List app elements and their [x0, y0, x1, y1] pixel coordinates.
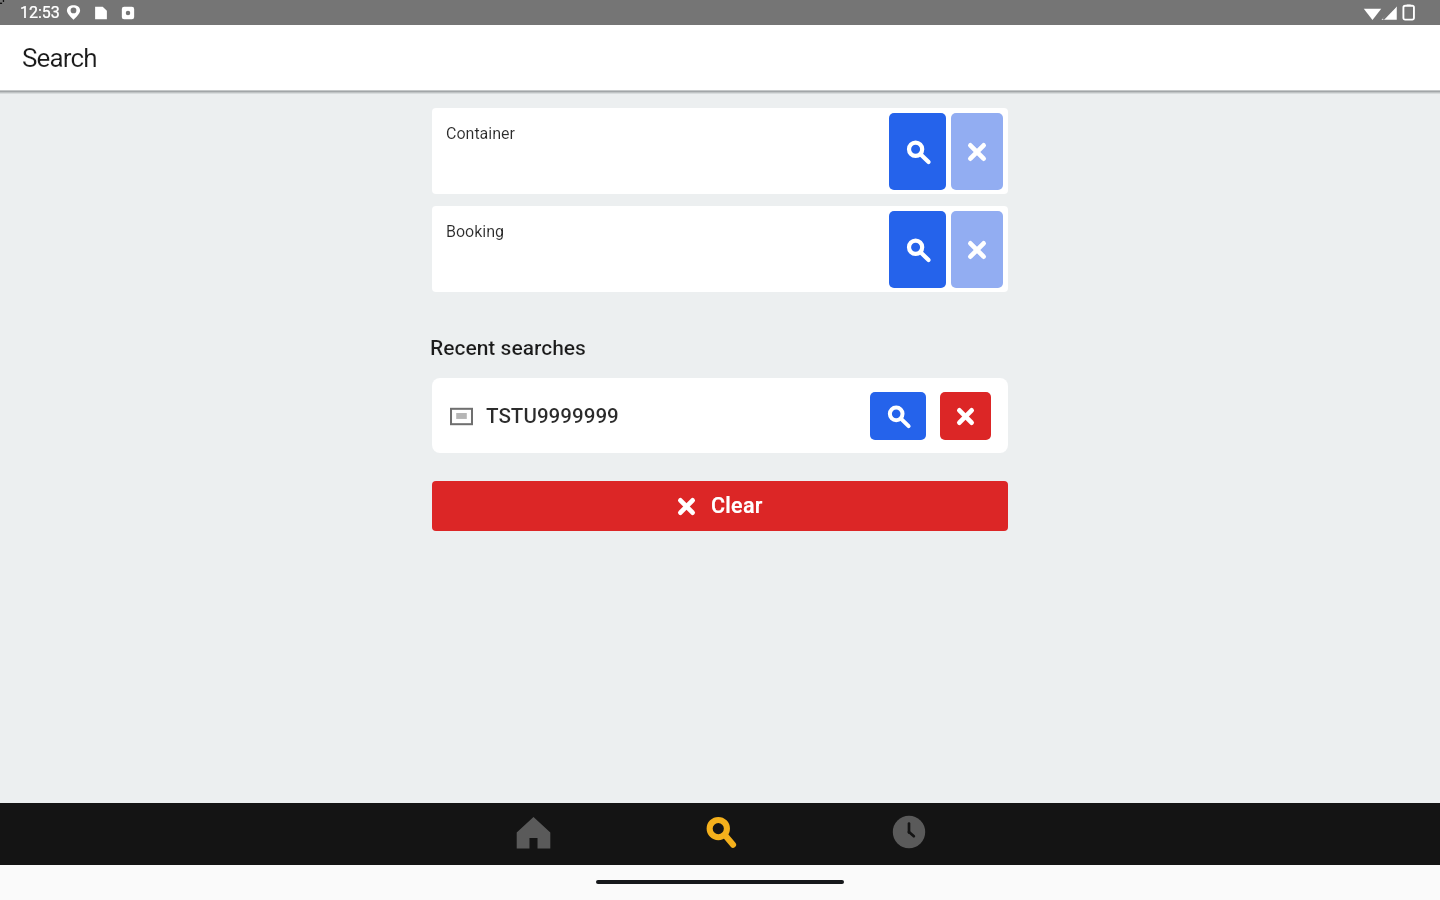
button[interactable]: TSTU9999999 — [432, 378, 1008, 453]
button[interactable]: Search Booking — [889, 211, 946, 288]
staticText: TSTU9999999 — [486, 404, 619, 428]
staticText: Recent searches — [430, 336, 586, 361]
staticText: Container — [446, 124, 515, 143]
button[interactable]: Search — [627, 801, 815, 863]
staticText: Clear — [711, 493, 763, 518]
button[interactable]: Search Container — [889, 113, 946, 190]
staticText: Search — [22, 43, 97, 73]
button[interactable]: Home — [439, 801, 627, 863]
button[interactable]: Search again — [870, 392, 926, 440]
staticText: Booking — [446, 222, 505, 241]
button[interactable]: Clear Container — [951, 113, 1003, 190]
button[interactable]: Clear Booking — [951, 211, 1003, 288]
button[interactable]: Clear — [432, 481, 1008, 531]
staticText: 12:53 — [20, 3, 60, 22]
button[interactable]: Delete recent search — [940, 392, 991, 440]
button[interactable]: History — [815, 801, 1003, 863]
button[interactable]: Booking — [432, 206, 1008, 292]
button[interactable]: Container — [432, 108, 1008, 194]
